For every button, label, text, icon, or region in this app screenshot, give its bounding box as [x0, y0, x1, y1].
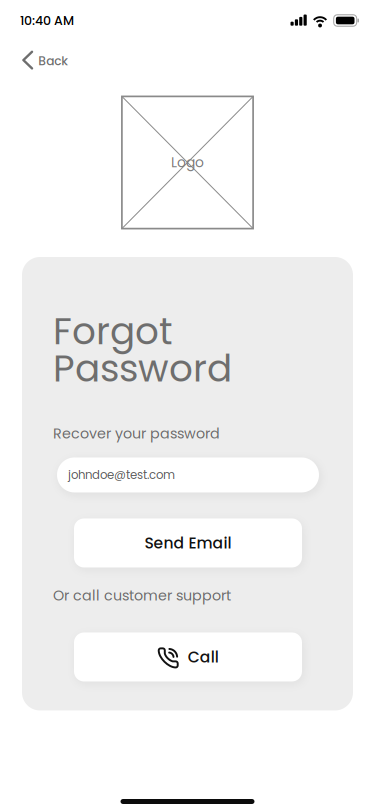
staticText: Forgot Password — [53, 305, 232, 394]
staticText: Logo — [171, 153, 204, 172]
staticText: Recover your password — [53, 423, 220, 443]
button[interactable]: Call — [74, 632, 302, 681]
staticText: Call — [188, 646, 219, 668]
staticText: Or call customer support — [53, 585, 231, 605]
staticText: Back — [38, 52, 68, 70]
staticText: Send Email — [144, 532, 231, 554]
button[interactable]: Back — [0, 41, 84, 77]
staticText: 10:40 AM — [20, 12, 74, 29]
staticText: johndoe@test.com — [68, 467, 175, 483]
button[interactable]: Send Email — [74, 518, 302, 567]
